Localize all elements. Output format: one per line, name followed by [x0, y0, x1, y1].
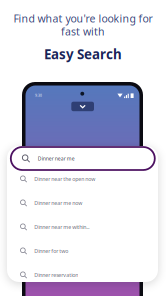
button[interactable]: Dinner near me within...: [7, 215, 158, 239]
staticText: Dinner near me now: [34, 199, 82, 207]
staticText: Dinner near the open now: [34, 175, 95, 183]
button[interactable]: Dinner for two: [7, 239, 158, 263]
staticText: fast with: [61, 24, 105, 39]
button[interactable]: Dinner near the open now: [7, 167, 158, 191]
button[interactable]: Dinner reservation: [7, 263, 158, 287]
staticText: Dinner near me: [38, 155, 75, 162]
staticText: Find what you're looking for: [13, 11, 152, 26]
staticText: Easy Search: [44, 45, 122, 63]
staticText: Dinner reservation: [34, 271, 78, 279]
button[interactable]: Dinner near me now: [7, 191, 158, 215]
staticText: 9:30: [35, 93, 42, 98]
staticText: Dinner near me within...: [34, 223, 89, 231]
staticText: Dinner for two: [34, 247, 68, 255]
